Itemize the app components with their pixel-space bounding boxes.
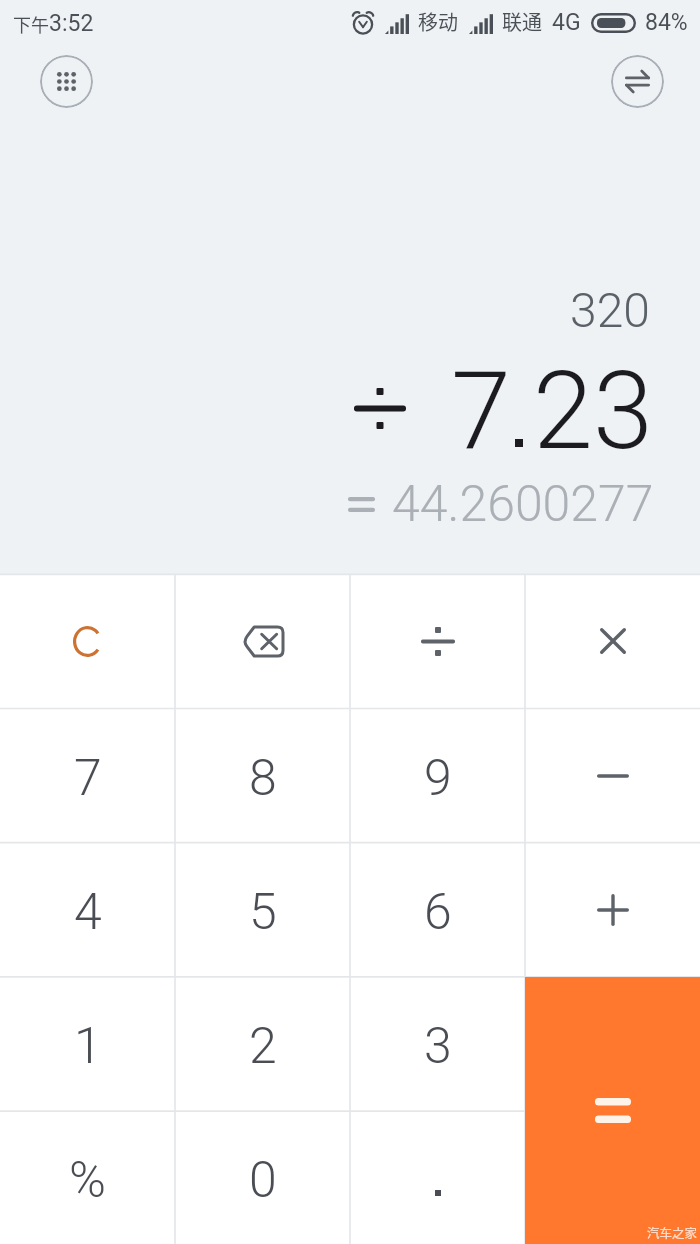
staticText: 9 [424, 749, 452, 808]
staticText: 1 [74, 1017, 102, 1076]
staticText: 2 [249, 1017, 277, 1076]
staticText: 3:52 [49, 10, 94, 37]
button[interactable]: Clear [0, 574, 175, 708]
button[interactable]: Multiply [525, 574, 700, 708]
staticText: 7 [451, 348, 511, 475]
staticText: 7 [74, 749, 102, 808]
button[interactable]: 2 [175, 977, 350, 1111]
button[interactable]: 3 [350, 977, 525, 1111]
staticText: 6 [424, 883, 452, 942]
button[interactable]: 8 [175, 709, 350, 843]
button[interactable]: 6 [350, 843, 525, 977]
button[interactable]: Minus [525, 709, 700, 843]
staticText: 4G [552, 9, 581, 36]
staticText: 5 [249, 883, 277, 942]
staticText: 3 [424, 1017, 452, 1076]
staticText: 44.2600277 [392, 475, 654, 534]
staticText: 84% [645, 9, 688, 36]
button[interactable]: % [0, 1111, 175, 1244]
button[interactable]: Unit converter [611, 55, 664, 108]
staticText: 下午 [13, 11, 49, 37]
button[interactable]: Plus [525, 843, 700, 977]
staticText: 23 [533, 348, 653, 475]
button[interactable]: Divide [350, 574, 525, 708]
staticText: 0 [249, 1151, 277, 1210]
button[interactable]: 9 [350, 709, 525, 843]
button[interactable]: 1 [0, 977, 175, 1111]
staticText: 4 [74, 883, 102, 942]
button[interactable]: 0 [175, 1111, 350, 1244]
staticText: 联通 [502, 7, 542, 36]
button[interactable]: 4 [0, 843, 175, 977]
button[interactable]: Equals [525, 977, 700, 1244]
staticText: % [69, 1151, 106, 1210]
button[interactable]: Backspace [175, 574, 350, 708]
button[interactable]: 5 [175, 843, 350, 977]
staticText: 320 [570, 282, 650, 338]
button[interactable]: Apps [40, 55, 93, 108]
staticText: 移动 [418, 7, 458, 36]
staticText: 8 [249, 749, 277, 808]
button[interactable]: Decimal point [350, 1111, 525, 1244]
button[interactable]: 7 [0, 709, 175, 843]
staticText: 汽车之家 [647, 1223, 698, 1241]
